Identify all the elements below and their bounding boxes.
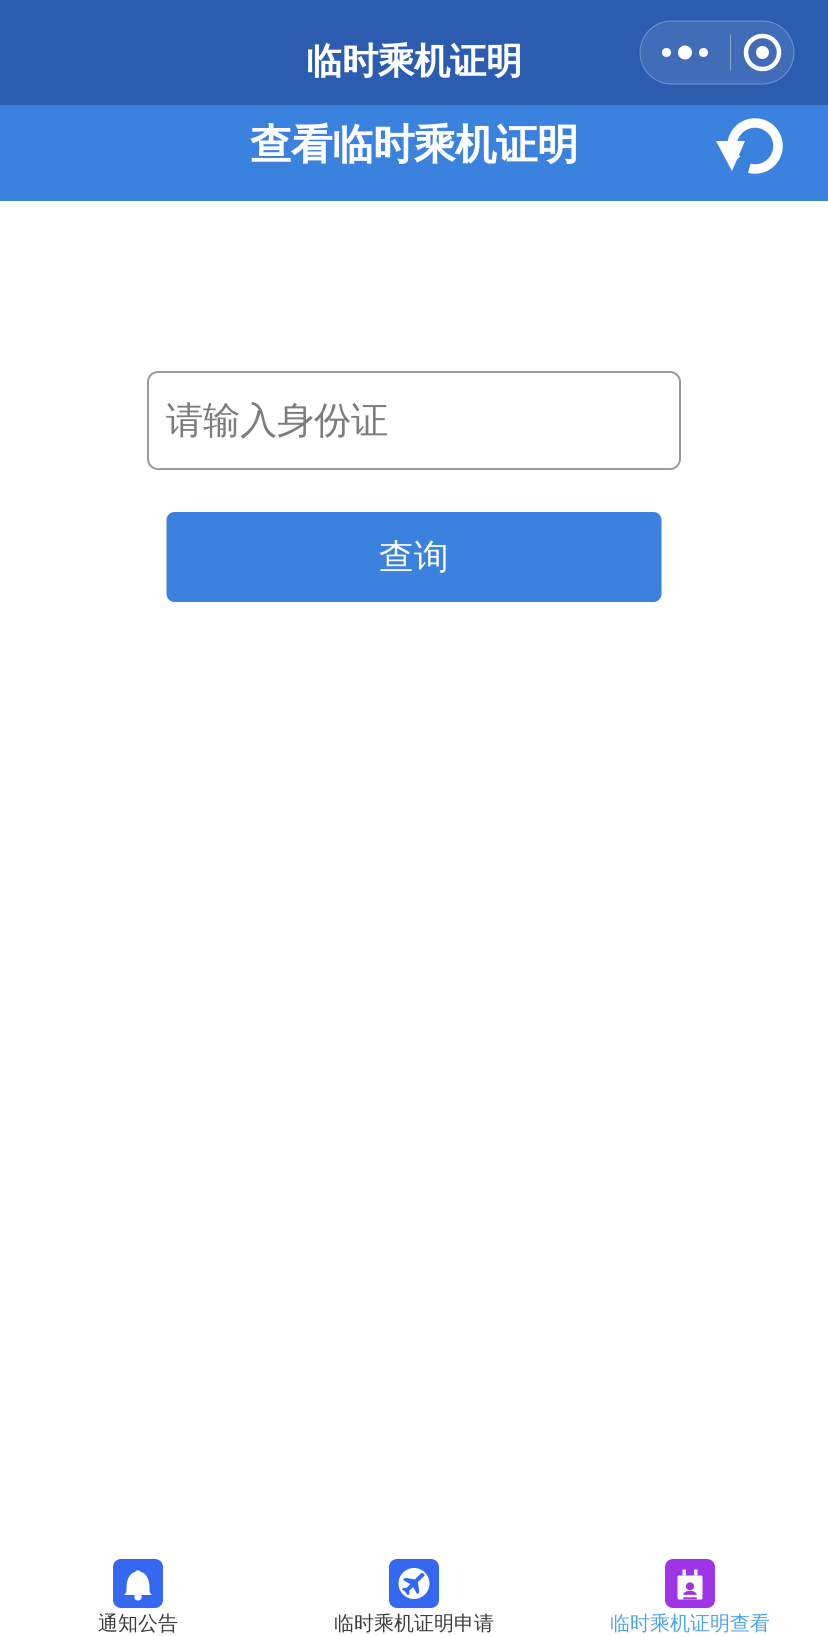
staticText: 临时乘机证明申请 [334, 1611, 494, 1636]
staticText: 查询 [379, 536, 449, 578]
staticText: 通知公告 [98, 1611, 178, 1636]
button[interactable]: 通知公告 [0, 1559, 276, 1636]
button[interactable]: 查询 [166, 512, 661, 602]
staticText: 请输入身份证 [166, 398, 388, 443]
staticText: 查看临时乘机证明 [250, 120, 578, 170]
button[interactable]: 临时乘机证明查看 [552, 1559, 828, 1636]
button[interactable]: More options [640, 21, 794, 84]
staticText: 临时乘机证明查看 [610, 1611, 770, 1636]
button[interactable]: 请输入身份证 [148, 372, 680, 469]
staticText: 临时乘机证明 [306, 39, 522, 84]
button[interactable]: 临时乘机证明申请 [276, 1559, 552, 1636]
button[interactable]: Refresh [715, 117, 781, 175]
